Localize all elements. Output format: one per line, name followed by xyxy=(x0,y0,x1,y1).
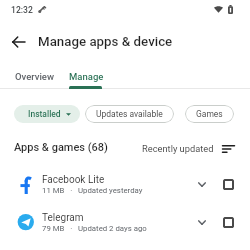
button[interactable]: Overview xyxy=(4,64,66,89)
staticText: 11 MB · Updated yesterday xyxy=(42,186,143,195)
button[interactable]: Back xyxy=(4,28,32,56)
button[interactable]: Updates available xyxy=(85,105,174,123)
staticText: Installed xyxy=(28,109,61,119)
button[interactable]: Installed xyxy=(14,105,80,123)
staticText: 79 MB · Updated 2 days ago xyxy=(42,224,147,233)
staticText: Manage xyxy=(69,71,104,82)
staticText: Manage apps & device xyxy=(38,34,173,50)
button[interactable]: Games xyxy=(185,105,234,123)
staticText: Updates available xyxy=(96,109,163,119)
button[interactable]: Expand xyxy=(192,212,212,232)
staticText: Recently updated xyxy=(142,143,214,154)
button[interactable]: Recently updated xyxy=(142,140,235,156)
button[interactable]: Expand xyxy=(192,174,212,194)
button[interactable]: Manage xyxy=(62,64,110,89)
button[interactable] xyxy=(0,167,250,205)
button[interactable]: Select app xyxy=(218,174,238,194)
button[interactable] xyxy=(0,205,250,243)
staticText: Telegram xyxy=(42,212,84,224)
staticText: Apps & games (68) xyxy=(14,141,108,154)
staticText: 12:32 xyxy=(11,5,33,15)
button[interactable]: Select app xyxy=(218,212,238,232)
staticText: Overview xyxy=(15,71,55,82)
staticText: Facebook Lite xyxy=(42,174,105,186)
staticText: Games xyxy=(196,109,223,119)
